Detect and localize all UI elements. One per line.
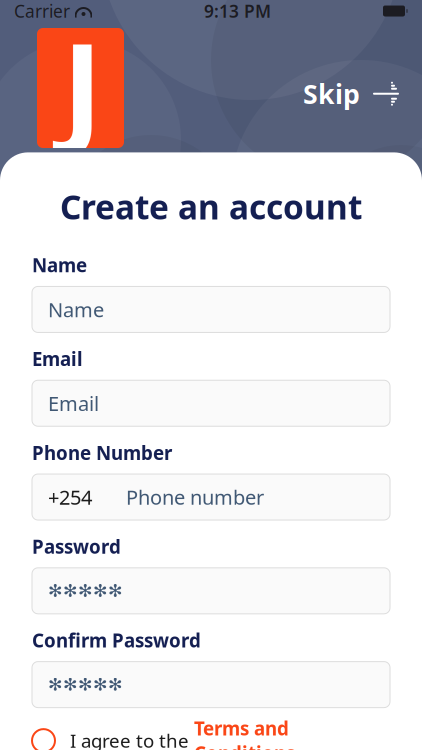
staticText: Name	[32, 253, 87, 277]
staticText: +254	[48, 484, 92, 510]
staticText: Password	[32, 534, 121, 559]
button[interactable]: +254	[32, 474, 390, 520]
staticText: ✻✻✻✻✻	[48, 581, 123, 601]
staticText: ✻✻✻✻✻	[48, 675, 123, 694]
staticText: Phone number	[126, 484, 264, 510]
staticText: Create an account	[60, 184, 362, 229]
staticText: Skip	[303, 76, 360, 111]
staticText: Email	[32, 346, 83, 371]
staticText: Carrier	[14, 0, 70, 22]
staticText: Phone Number	[32, 440, 172, 465]
staticText: Terms and Conditions	[194, 716, 295, 750]
staticText: 9:13 PM	[204, 0, 271, 22]
button[interactable]: Skip	[297, 68, 406, 119]
button[interactable]: I agree to the	[32, 726, 390, 750]
button[interactable]: ✻✻✻✻✻	[32, 662, 390, 708]
button[interactable]: ✻✻✻✻✻	[32, 568, 390, 614]
staticText: Confirm Password	[32, 628, 201, 653]
staticText: Name	[48, 296, 104, 323]
staticText: I agree to the	[55, 728, 194, 750]
button[interactable]: Name	[32, 286, 390, 332]
staticText: J	[62, 3, 103, 165]
button[interactable]: Email	[32, 380, 390, 426]
staticText: Email	[48, 390, 99, 417]
